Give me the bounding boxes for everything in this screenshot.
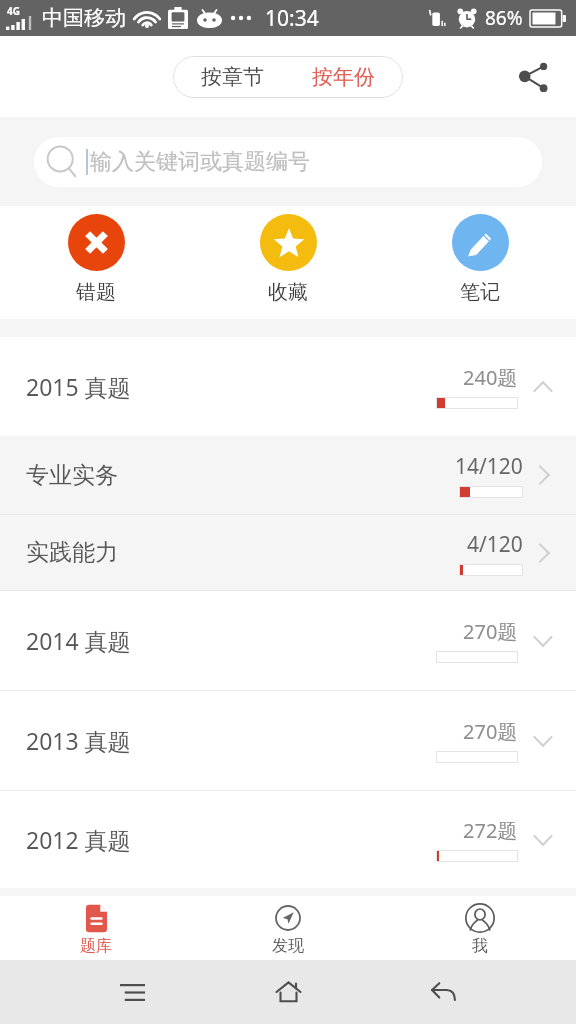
staticText: 收藏: [268, 280, 308, 305]
staticText: 10:34: [265, 4, 319, 33]
staticText: 按年份: [312, 64, 375, 90]
staticText: 240题: [463, 364, 518, 391]
button[interactable]: 笔记: [384, 212, 576, 313]
button[interactable]: 实践能力: [0, 515, 576, 590]
button[interactable]: 2013 真题: [0, 691, 576, 790]
button[interactable]: 专业实务: [0, 436, 576, 514]
button[interactable]: 错题: [0, 212, 192, 313]
staticText: 2012 真题: [26, 824, 131, 855]
staticText: 2013 真题: [26, 725, 131, 756]
staticText: 2015 真题: [26, 371, 131, 402]
button[interactable]: Back: [420, 968, 468, 1016]
staticText: 86%: [485, 5, 523, 31]
staticText: 题库: [80, 936, 112, 956]
button[interactable]: Home: [264, 968, 312, 1016]
staticText: 笔记: [460, 280, 500, 305]
staticText: 14/120: [455, 452, 523, 481]
button[interactable]: 2014 真题: [0, 591, 576, 690]
button[interactable]: 题库: [0, 896, 192, 960]
button[interactable]: Menu: [108, 968, 156, 1016]
staticText: 错题: [76, 280, 116, 305]
staticText: 270题: [463, 618, 518, 645]
staticText: 我: [472, 936, 488, 956]
staticText: 发现: [272, 936, 304, 956]
button[interactable]: 按章节: [173, 56, 288, 98]
button[interactable]: 2015 真题: [0, 337, 576, 436]
button[interactable]: 发现: [192, 896, 384, 960]
staticText: 中国移动: [42, 5, 126, 31]
button[interactable]: 收藏: [192, 212, 384, 313]
staticText: 2014 真题: [26, 625, 131, 656]
button[interactable]: Share: [512, 55, 556, 99]
staticText: 4/120: [467, 530, 523, 559]
button[interactable]: 我: [384, 896, 576, 960]
staticText: 272题: [463, 817, 518, 844]
staticText: 4G: [7, 4, 20, 18]
button[interactable]: 2012 真题: [0, 791, 576, 888]
button[interactable]: 输入关键词或真题编号: [34, 137, 542, 187]
button[interactable]: 按年份: [288, 56, 403, 98]
staticText: 专业实务: [26, 461, 118, 490]
staticText: 实践能力: [26, 538, 118, 567]
staticText: 输入关键词或真题编号: [90, 148, 310, 176]
staticText: 270题: [463, 718, 518, 745]
staticText: 按章节: [201, 64, 264, 90]
